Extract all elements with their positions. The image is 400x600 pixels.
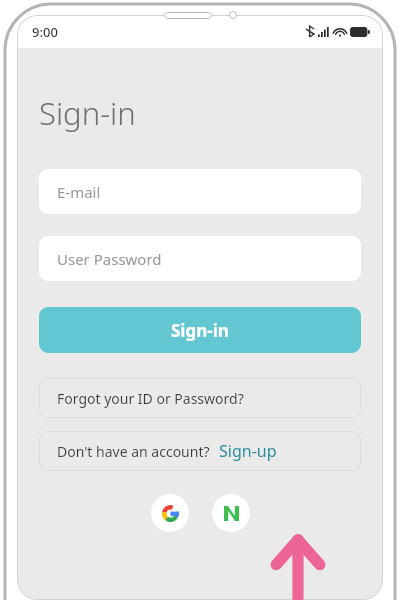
staticText: User Password	[57, 249, 162, 269]
staticText: Don't have an account?	[57, 442, 210, 461]
staticText: Sign-in	[171, 319, 229, 342]
button[interactable]: Sign-in	[39, 307, 361, 353]
staticText: Forgot your ID or Password?	[57, 389, 244, 408]
button[interactable]: Forgot your ID or Password?	[39, 378, 361, 418]
button[interactable]: E-mail	[39, 169, 361, 214]
staticText: 9:00	[32, 23, 58, 41]
button[interactable]: Don't have an account?	[39, 431, 361, 471]
staticText: E-mail	[57, 182, 101, 202]
button[interactable]: Sign in with Google	[151, 494, 189, 532]
button[interactable]: User Password	[39, 236, 361, 281]
button[interactable]: Sign-up	[219, 440, 277, 462]
staticText: Sign-up	[219, 440, 277, 462]
staticText: Sign-in	[39, 92, 136, 134]
button[interactable]: Sign in with Naver	[212, 494, 250, 532]
